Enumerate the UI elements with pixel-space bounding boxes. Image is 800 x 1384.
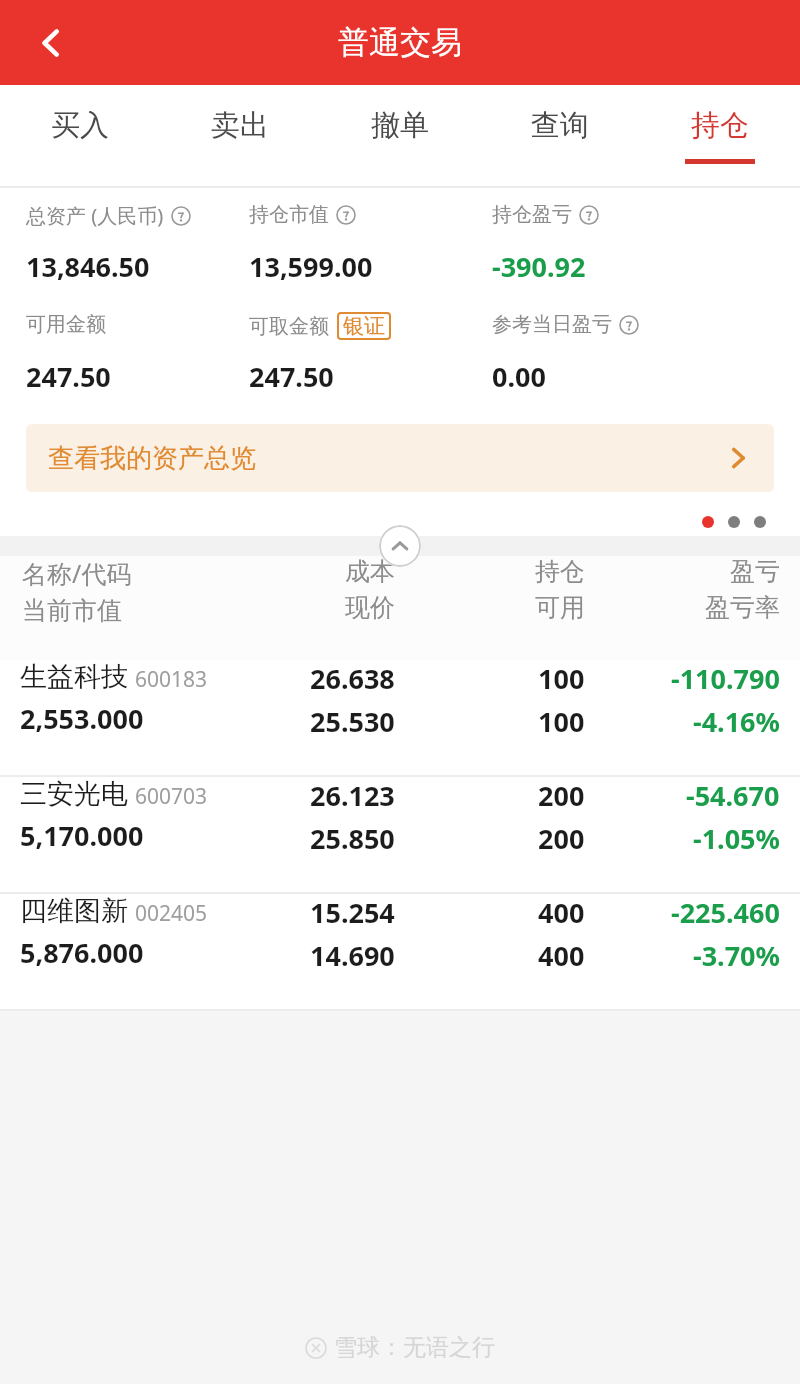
button[interactable]: 四维图新 (0, 894, 800, 1011)
staticText: 持仓盈亏 (492, 202, 572, 227)
staticText: 0.00 (492, 358, 546, 395)
staticText: 持仓 (535, 556, 585, 587)
staticText: 26.638 (310, 660, 395, 697)
staticText: -390.92 (492, 248, 586, 285)
staticText: 25.530 (310, 703, 395, 740)
staticText: 雪球：无语之行 (334, 1333, 495, 1362)
staticText: 买入 (51, 107, 109, 144)
staticText: 5,170.000 (20, 817, 144, 854)
staticText: 可用金额 (26, 312, 106, 337)
staticText: 14.690 (310, 937, 395, 974)
staticText: 银证 (343, 313, 385, 339)
button[interactable]: 三安光电 (0, 777, 800, 894)
button[interactable]: 查看我的资产总览 (26, 424, 774, 492)
staticText: -110.790 (671, 660, 780, 697)
staticText: 100 (538, 703, 585, 740)
staticText: 参考当日盈亏 (492, 312, 612, 337)
staticText: 总资产 (人民币) (26, 202, 164, 229)
staticText: -54.670 (686, 777, 780, 814)
staticText: -1.05% (693, 820, 780, 857)
button[interactable]: 生益科技 (0, 660, 800, 777)
staticText: 四维图新 (20, 894, 128, 928)
staticText: 持仓市值 (249, 202, 329, 227)
staticText: 100 (538, 660, 585, 697)
staticText: 成本 (345, 556, 395, 587)
staticText: 247.50 (26, 358, 111, 395)
staticText: 002405 (135, 899, 208, 928)
button[interactable]: Back (22, 14, 80, 72)
staticText: 2,553.000 (20, 700, 144, 737)
staticText: 247.50 (249, 358, 334, 395)
staticText: 400 (538, 894, 585, 931)
staticText: 26.123 (310, 777, 395, 814)
staticText: 查看我的资产总览 (48, 442, 256, 475)
staticText: 15.254 (310, 894, 395, 931)
staticText: 200 (538, 777, 585, 814)
staticText: 生益科技 (20, 660, 128, 694)
staticText: 600183 (135, 665, 208, 694)
staticText: 名称/代码 (22, 556, 132, 590)
staticText: 600703 (135, 782, 208, 811)
staticText: 撤单 (371, 107, 429, 144)
staticText: 13,599.00 (249, 248, 373, 285)
button[interactable]: 买入 (0, 85, 160, 186)
staticText: -225.460 (671, 894, 780, 931)
staticText: 盈亏 (730, 556, 780, 587)
staticText: 三安光电 (20, 777, 128, 811)
button[interactable]: 撤单 (320, 85, 480, 186)
staticText: 可用 (535, 592, 585, 623)
staticText: 当前市值 (22, 595, 122, 626)
button[interactable]: 持仓 (640, 85, 800, 186)
staticText: -3.70% (693, 937, 780, 974)
staticText: 可取金额 (249, 314, 329, 339)
staticText: -4.16% (693, 703, 780, 740)
staticText: 400 (538, 937, 585, 974)
button[interactable]: 查询 (480, 85, 640, 186)
button[interactable]: 卖出 (160, 85, 320, 186)
staticText: 持仓 (691, 107, 749, 144)
staticText: 200 (538, 820, 585, 857)
staticText: 查询 (531, 107, 589, 144)
staticText: 13,846.50 (26, 248, 150, 285)
staticText: 卖出 (211, 107, 269, 144)
staticText: 5,876.000 (20, 934, 144, 971)
staticText: 普通交易 (338, 23, 462, 62)
staticText: 盈亏率 (705, 592, 780, 623)
button[interactable]: Collapse summary (379, 525, 421, 567)
staticText: 25.850 (310, 820, 395, 857)
staticText: 现价 (345, 592, 395, 623)
